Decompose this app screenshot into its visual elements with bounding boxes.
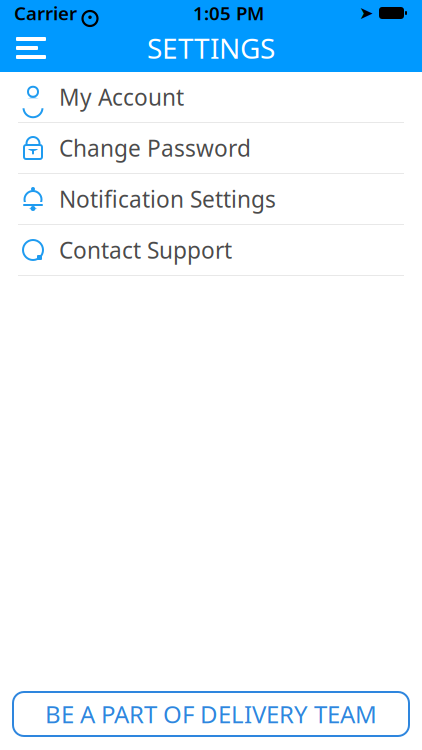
staticText: Contact Support — [59, 235, 232, 265]
button[interactable]: Notification Settings — [0, 174, 422, 225]
staticText: BE A PART OF DELIVERY TEAM — [45, 698, 377, 730]
staticText: My Account — [59, 82, 184, 112]
button[interactable]: Contact Support — [0, 225, 422, 276]
staticText: ➤ — [359, 3, 374, 23]
staticText: 1:05 PM — [193, 1, 264, 25]
button[interactable]: BE A PART OF DELIVERY TEAM — [13, 692, 409, 736]
staticText: SETTINGS — [147, 29, 275, 67]
button[interactable]: My Account — [0, 72, 422, 123]
staticText: Carrier — [14, 1, 77, 25]
staticText: Change Password — [59, 133, 251, 163]
staticText: Notification Settings — [59, 184, 276, 214]
button[interactable]: Change Password — [0, 123, 422, 174]
button[interactable]: Menu — [0, 25, 62, 71]
